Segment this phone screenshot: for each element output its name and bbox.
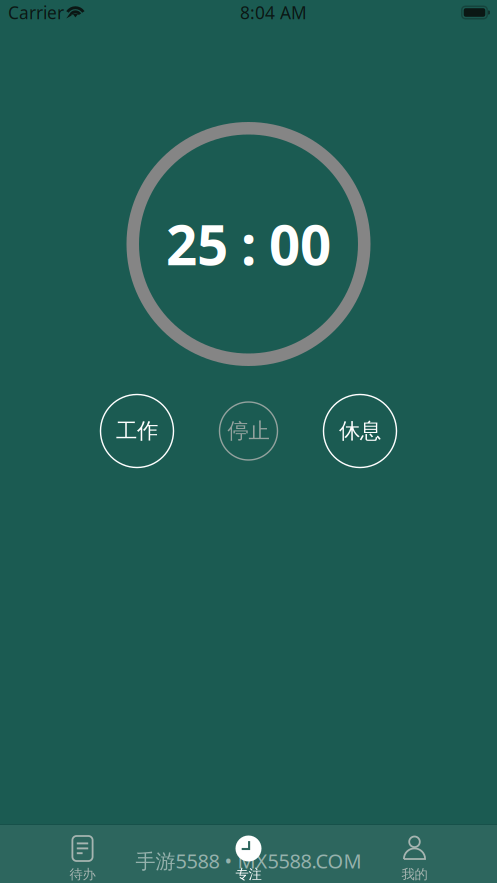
button[interactable]: 停止: [219, 402, 277, 460]
staticText: Carrier: [8, 1, 64, 24]
staticText: 专注: [235, 866, 261, 882]
staticText: 00: [269, 208, 331, 280]
staticText: 25: [166, 208, 228, 280]
button[interactable]: 休息: [323, 394, 396, 467]
staticText: 停止: [227, 418, 269, 444]
staticText: 休息: [339, 418, 381, 444]
staticText: :: [241, 208, 256, 280]
staticText: 8:04 AM: [240, 1, 307, 24]
button[interactable]: 待办: [22, 824, 142, 883]
button[interactable]: 我的: [354, 824, 474, 883]
staticText: 我的: [401, 866, 427, 882]
button[interactable]: 专注: [188, 824, 308, 883]
button[interactable]: 工作: [100, 394, 173, 467]
staticText: 工作: [116, 418, 158, 444]
staticText: 手游5588 • MX5588.COM: [135, 847, 361, 874]
staticText: 待办: [69, 866, 95, 882]
